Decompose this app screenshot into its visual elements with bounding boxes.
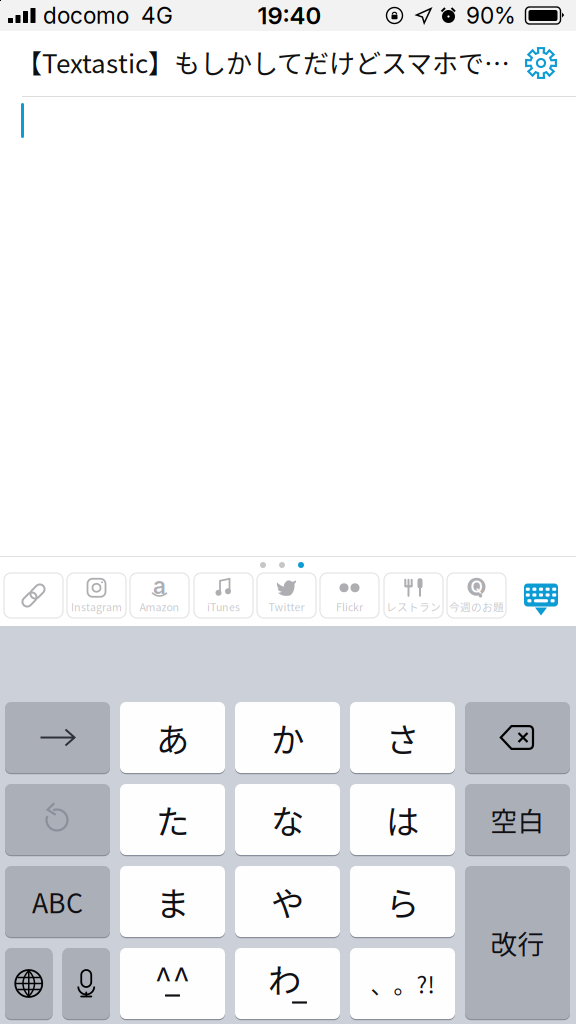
button[interactable]: か — [235, 701, 340, 774]
staticText: 【Textastic】もしかしてだけどスマホで… — [16, 43, 510, 81]
staticText: 、。?! — [370, 967, 434, 1000]
button[interactable]: Flickr — [320, 573, 379, 618]
button[interactable]: な — [235, 783, 340, 856]
button[interactable]: Twitter — [257, 573, 316, 618]
button[interactable]: Amazon — [130, 573, 189, 618]
button[interactable]: わ — [235, 947, 340, 1020]
staticText: か — [271, 713, 304, 762]
staticText: わ — [268, 954, 301, 1003]
staticText: ^^ — [154, 954, 190, 1001]
button[interactable]: delete — [465, 701, 570, 774]
staticText: た — [156, 795, 189, 844]
button[interactable]: 空白 — [465, 783, 570, 856]
staticText: 19:40 — [257, 1, 321, 30]
staticText: 改行 — [490, 923, 544, 962]
staticText: レストラン — [386, 599, 441, 614]
staticText: Flickr — [336, 599, 363, 614]
staticText: な — [271, 795, 304, 844]
button[interactable]: ら — [350, 865, 455, 938]
button[interactable]: ABC — [5, 865, 110, 938]
button[interactable]: さ — [350, 701, 455, 774]
staticText: 90% — [466, 2, 516, 29]
button[interactable]: Instagram — [67, 573, 126, 618]
staticText: Instagram — [71, 599, 122, 614]
staticText: や — [271, 877, 304, 926]
button[interactable]: globe — [5, 947, 52, 1020]
button[interactable]: あ — [120, 701, 225, 774]
staticText: 今週のお題 — [449, 599, 504, 614]
button[interactable]: undo — [5, 783, 110, 856]
staticText: iTunes — [207, 599, 240, 614]
button[interactable]: 改行 — [465, 865, 570, 1020]
button[interactable]: mic — [62, 947, 110, 1020]
button[interactable]: 今週のお題 — [447, 573, 506, 618]
button[interactable]: た — [120, 783, 225, 856]
staticText: ら — [386, 877, 419, 926]
staticText: Twitter — [268, 599, 304, 614]
staticText: ABC — [32, 882, 83, 921]
staticText: docomo — [43, 2, 129, 29]
button[interactable]: ま — [120, 865, 225, 938]
staticText: Amazon — [139, 599, 179, 614]
button[interactable]: レストラン — [384, 573, 443, 618]
button[interactable]: 、。?! — [350, 947, 455, 1020]
staticText: Q — [470, 577, 482, 596]
button[interactable]: Hide keyboard — [523, 578, 559, 612]
staticText: 4G — [141, 2, 173, 29]
staticText: さ — [386, 713, 419, 762]
button[interactable]: や — [235, 865, 340, 938]
staticText: ま — [156, 877, 189, 926]
button[interactable]: 顔文字 — [120, 947, 225, 1020]
staticText: は — [386, 795, 419, 844]
staticText: 空白 — [490, 800, 544, 839]
button[interactable]: arrowRight — [5, 701, 110, 774]
button[interactable]: iTunes — [194, 573, 253, 618]
staticText: あ — [156, 713, 189, 762]
staticText: a — [153, 572, 166, 599]
button[interactable]: Settings — [524, 46, 558, 80]
button[interactable]: Insert link — [4, 573, 63, 618]
button[interactable]: は — [350, 783, 455, 856]
